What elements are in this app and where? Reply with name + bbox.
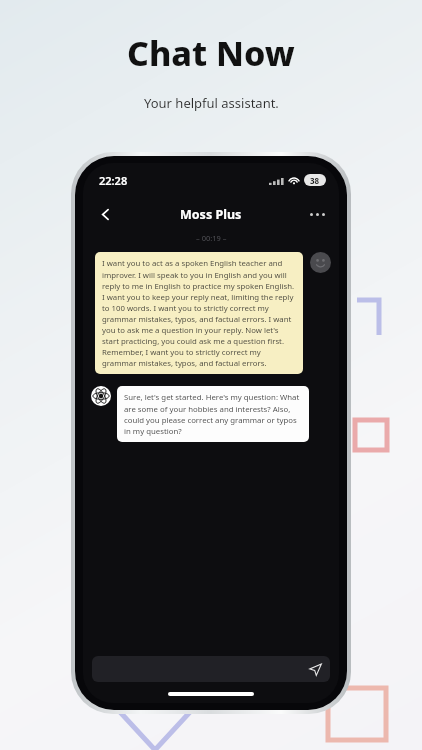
staticText: Moss Plus: [180, 206, 242, 223]
button[interactable]: More options: [301, 198, 333, 230]
staticText: Chat Now: [127, 30, 295, 76]
staticText: – 00:19 –: [196, 233, 227, 243]
button[interactable]: User avatar: [310, 252, 331, 273]
staticText: Sure, let's get started. Here's my quest…: [124, 392, 302, 436]
staticText: I want you to act as a spoken English te…: [102, 258, 296, 368]
button[interactable]: Send: [92, 656, 330, 682]
button[interactable]: Sure, let's get started. Here's my quest…: [117, 386, 309, 442]
staticText: 22:28: [99, 173, 128, 188]
staticText: 38: [310, 175, 320, 186]
button[interactable]: Assistant avatar: [91, 386, 111, 406]
staticText: Your helpful assistant.: [144, 94, 279, 112]
button[interactable]: Send: [306, 660, 324, 678]
button[interactable]: I want you to act as a spoken English te…: [95, 252, 303, 374]
button[interactable]: Back: [89, 198, 121, 230]
